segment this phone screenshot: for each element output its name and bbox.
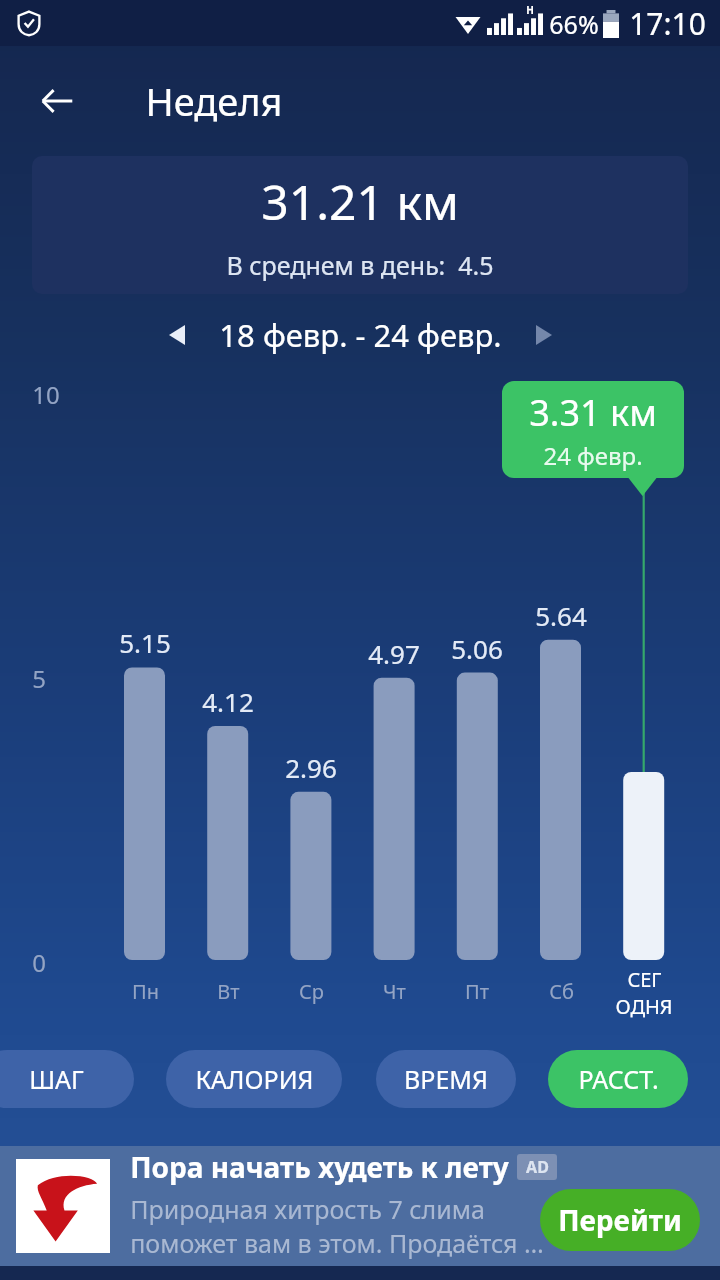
staticText: поможет вам в этом. Продаётся … [130, 1226, 544, 1260]
staticText: Природная хитрость 7 слима [130, 1192, 485, 1226]
staticText: В среднем в день: 4.5 [226, 248, 494, 282]
staticText: 4.97 [368, 636, 420, 671]
staticText: СЕГ [627, 966, 662, 993]
staticText: 2.96 [285, 750, 337, 785]
button[interactable]: Пора начать худеть к лету [0, 1146, 720, 1266]
staticText: 5 [32, 662, 46, 695]
button[interactable]: 31.21 км [32, 156, 688, 294]
staticText: Пт [465, 978, 489, 1005]
staticText: Неделя [145, 75, 283, 127]
staticText: Ср [299, 978, 324, 1005]
staticText: 5.64 [535, 598, 587, 633]
button[interactable]: Следующая неделя [518, 309, 570, 361]
staticText: ШАГ [29, 1062, 84, 1096]
staticText: 66% [549, 7, 599, 41]
staticText: AD [526, 1156, 549, 1178]
button[interactable]: Предыдущая неделя [151, 309, 203, 361]
staticText: Сб [549, 978, 574, 1005]
staticText: 0 [32, 946, 46, 979]
button[interactable]: ВРЕМЯ [376, 1050, 516, 1108]
staticText: ВРЕМЯ [404, 1062, 488, 1096]
button[interactable]: Перейти [540, 1189, 700, 1251]
button[interactable]: 18 февр. - 24 февр. [219, 314, 502, 356]
staticText: 5.15 [119, 625, 171, 660]
button[interactable]: ШАГ [0, 1050, 134, 1108]
button[interactable]: КАЛОРИЯ [166, 1050, 342, 1108]
staticText: H [526, 3, 534, 17]
staticText: РАССТ. [578, 1062, 659, 1096]
staticText: КАЛОРИЯ [195, 1062, 314, 1096]
staticText: 31.21 км [261, 169, 459, 234]
staticText: 4.12 [202, 684, 254, 719]
staticText: 17:10 [629, 3, 706, 44]
staticText: Пора начать худеть к лету [130, 1148, 509, 1186]
button[interactable]: РАССТ. [548, 1050, 688, 1108]
staticText: Перейти [558, 1201, 682, 1239]
button[interactable]: 3.31 км [502, 381, 684, 478]
staticText: 10 [32, 378, 60, 411]
staticText: Чт [383, 978, 406, 1005]
staticText: Вт [217, 978, 240, 1005]
staticText: ОДНЯ [615, 993, 673, 1020]
staticText: Пн [132, 978, 159, 1005]
staticText: 24 февр. [543, 439, 643, 472]
staticText: 3.31 км [529, 388, 657, 437]
staticText: 5.06 [451, 631, 503, 666]
button[interactable]: Назад [24, 68, 90, 134]
